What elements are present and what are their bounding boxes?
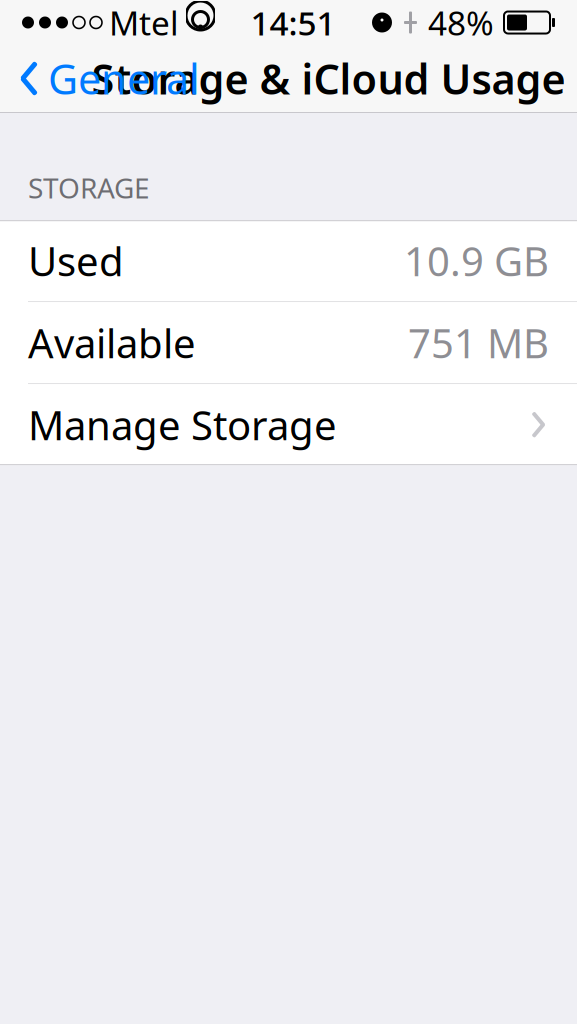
staticText: Storage & iCloud Usage — [91, 51, 565, 106]
staticText: Manage Storage — [28, 398, 337, 451]
staticText: 48% — [428, 0, 494, 45]
staticText: General — [48, 51, 200, 106]
staticText: STORAGE — [28, 169, 150, 206]
staticText: 14:51 — [250, 0, 335, 45]
button[interactable]: General — [0, 43, 200, 114]
staticText: Available — [28, 316, 196, 369]
staticText: 10.9 GB — [404, 234, 549, 287]
button[interactable]: Used — [0, 220, 577, 301]
staticText: Used — [28, 234, 124, 287]
staticText: 751 MB — [408, 316, 549, 369]
button[interactable]: Manage Storage — [0, 384, 577, 465]
staticText: Mtel — [109, 0, 179, 45]
button[interactable]: Available — [0, 302, 577, 383]
